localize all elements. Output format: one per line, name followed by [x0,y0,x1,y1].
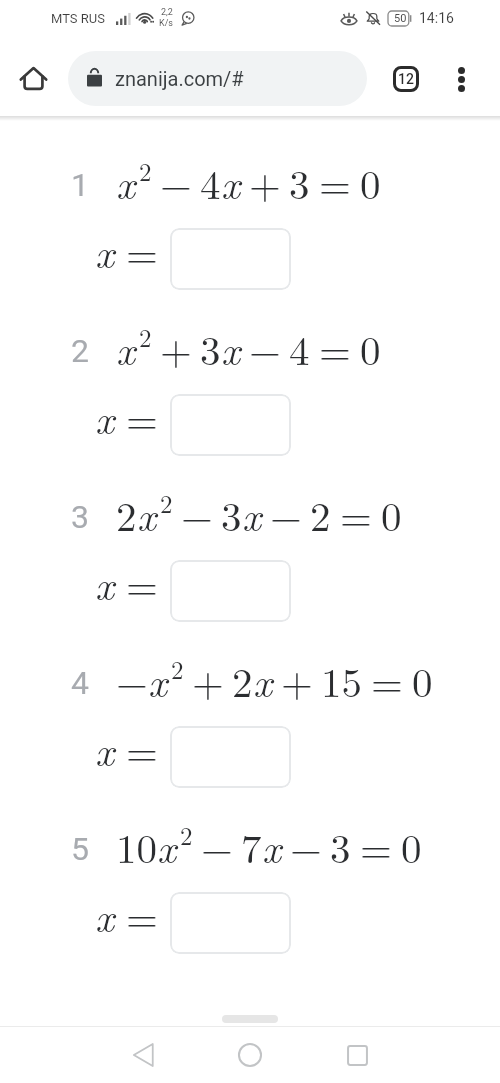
staticText: − [270,485,302,543]
staticText: x [116,319,136,377]
staticText: 3 [71,498,89,536]
staticText: − [181,485,213,543]
staticText: + [249,153,281,211]
staticText: 2 [310,485,331,543]
staticText: 7 [241,817,262,875]
staticText: x [137,485,157,543]
staticText: x [95,720,115,778]
staticText: = [360,817,392,875]
staticText: 14:16 [419,10,454,26]
staticText: 2 [232,651,253,709]
button[interactable] [170,892,291,954]
staticText: x [262,817,282,875]
staticText: 0 [381,485,402,543]
button[interactable] [170,560,291,622]
staticText: = [319,319,351,377]
staticText: x [253,651,273,709]
staticText: = [126,720,158,778]
staticText: − [116,651,148,709]
staticText: x [95,886,115,944]
button[interactable]: Home [10,56,56,102]
staticText: 0 [360,319,381,377]
staticText: x [242,485,262,543]
staticText: = [319,153,351,211]
staticText: 2 [71,332,89,370]
staticText: x [157,817,177,875]
button[interactable]: znanija.com/# [68,51,367,106]
button[interactable]: Tabs, 12 open [385,58,427,100]
staticText: x [148,651,168,709]
staticText: 4 [200,153,221,211]
button[interactable] [170,394,291,456]
staticText: 2 [116,485,137,543]
staticText: 2 [171,651,184,686]
staticText: 0 [360,153,381,211]
staticText: x [221,153,241,211]
staticText: 0 [412,651,433,709]
staticText: − [201,817,233,875]
staticText: 3 [330,817,351,875]
staticText: 2 [139,319,152,354]
staticText: − [290,817,322,875]
staticText: K/s [159,18,174,29]
staticText: 1 [71,166,89,204]
staticText: 0 [401,817,422,875]
staticText: = [126,886,158,944]
staticText: 3 [200,319,221,377]
staticText: znanija.com/# [115,67,244,90]
staticText: − [160,153,192,211]
staticText: 12 [398,71,414,87]
staticText: 15 [321,651,362,709]
staticText: x [95,388,115,446]
staticText: = [340,485,372,543]
button[interactable]: More options [441,59,481,99]
staticText: = [126,388,158,446]
button[interactable]: Recent apps [329,1027,385,1083]
staticText: 5 [71,830,89,868]
staticText: + [160,319,192,377]
staticText: = [371,651,403,709]
button[interactable] [170,228,291,290]
staticText: 3 [221,485,242,543]
staticText: 4 [71,664,89,702]
staticText: 4 [289,319,310,377]
button[interactable]: Home [222,1027,278,1083]
staticText: 50 [394,12,407,25]
staticText: x [221,319,241,377]
staticText: + [192,651,224,709]
staticText: 2 [180,817,193,852]
staticText: MTS RUS [51,11,105,26]
staticText: = [126,222,158,280]
button[interactable] [170,726,291,788]
staticText: = [126,554,158,612]
staticText: 3 [289,153,310,211]
button[interactable]: Back [115,1027,171,1083]
staticText: x [116,153,136,211]
staticText: − [249,319,281,377]
staticText: + [281,651,313,709]
staticText: 2 [139,153,152,188]
staticText: 2 [160,485,173,520]
staticText: x [95,222,115,280]
staticText: 2,2 [161,7,173,18]
staticText: x [95,554,115,612]
staticText: 10 [116,817,157,875]
